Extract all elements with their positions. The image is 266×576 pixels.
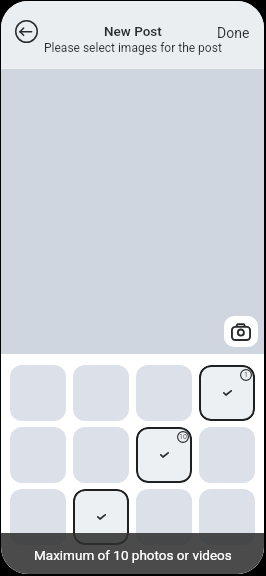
button[interactable]: [199, 489, 255, 545]
button[interactable]: [10, 427, 66, 483]
button[interactable]: 10: [136, 427, 192, 483]
staticText: 10: [179, 433, 187, 441]
staticText: New Post: [104, 23, 162, 39]
button[interactable]: [73, 427, 129, 483]
button[interactable]: Open camera: [224, 316, 258, 347]
button[interactable]: Done: [217, 25, 250, 41]
button[interactable]: [136, 365, 192, 421]
button[interactable]: Maximum of 10 photos or videos: [1, 533, 264, 574]
staticText: Done: [217, 25, 250, 41]
button[interactable]: [199, 427, 255, 483]
button[interactable]: [73, 365, 129, 421]
button[interactable]: [73, 489, 129, 545]
button[interactable]: [10, 489, 66, 545]
button[interactable]: Back: [15, 20, 38, 43]
staticText: Maximum of 10 photos or videos: [34, 547, 232, 563]
button[interactable]: 1: [199, 365, 255, 421]
staticText: Please select images for the post: [44, 41, 222, 55]
staticText: 1: [244, 371, 248, 379]
button[interactable]: [10, 365, 66, 421]
button[interactable]: [136, 489, 192, 545]
